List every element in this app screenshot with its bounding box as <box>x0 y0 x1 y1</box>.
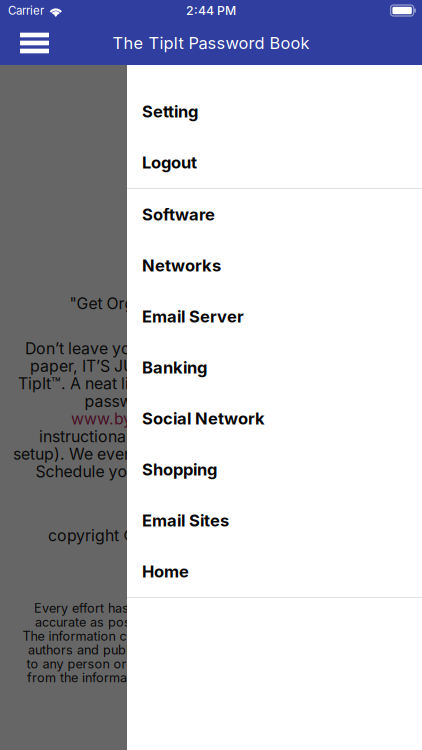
staticText: "Get Organized and Stay Secure, OK!" <box>69 294 352 313</box>
staticText: setup). We even have a spot for all of y… <box>13 444 409 464</box>
staticText: Schedule your own password reminders tod… <box>35 462 386 481</box>
staticText: passwords in one safe, tidy place. <box>84 392 337 411</box>
button[interactable]: Setting <box>127 86 422 137</box>
staticText: Home <box>142 561 189 581</box>
button[interactable]: Shopping <box>127 444 422 495</box>
staticText: 2:44 PM <box>186 3 236 18</box>
button[interactable]: Home <box>127 546 422 597</box>
staticText: accurate as possible, but no warranty or… <box>35 614 387 630</box>
staticText: Shopping <box>142 459 217 479</box>
staticText: www.bytheway.com/tipit-setup-book <box>71 409 351 428</box>
staticText: Don’t leave your passwords lying around … <box>25 339 397 358</box>
button[interactable]: Social Network <box>127 393 422 444</box>
staticText: TipIt™. A neat little book that keeps al… <box>18 374 404 393</box>
button[interactable]: Menu <box>0 21 90 65</box>
staticText: paper, IT’S JUST NOT SAFE! Store them al… <box>30 356 392 376</box>
staticText: copyright © 2019 TipIt Publications, all… <box>48 526 374 545</box>
staticText: Every effort has been made to make this … <box>34 601 388 616</box>
staticText: Social Network <box>142 408 265 428</box>
staticText: Logout <box>142 152 197 172</box>
button[interactable]: Email Server <box>127 291 422 342</box>
staticText: authors and publisher shall have neither… <box>28 642 394 658</box>
button[interactable]: Logout <box>127 137 422 188</box>
staticText: Email Server <box>142 306 244 326</box>
staticText: to any person or entity with respect to … <box>26 656 395 671</box>
staticText: Carrier <box>8 4 44 17</box>
staticText: Setting <box>142 101 198 121</box>
button[interactable]: Networks <box>127 240 422 291</box>
staticText: Email Sites <box>142 510 229 530</box>
staticText: Banking <box>142 357 207 377</box>
staticText: from the information contained in this b… <box>27 670 395 685</box>
staticText: The TipIt Password Book <box>112 33 309 53</box>
button[interactable]: Software <box>127 189 422 240</box>
staticText: Password Book Home <box>131 178 291 196</box>
button[interactable]: Email Sites <box>127 495 422 546</box>
staticText: Networks <box>142 255 221 275</box>
staticText: The information contained herein is prov… <box>22 628 399 644</box>
staticText: Software <box>142 204 215 224</box>
button[interactable]: Banking <box>127 342 422 393</box>
staticText: instructional content to help you out (i… <box>39 427 383 446</box>
